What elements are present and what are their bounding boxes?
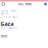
staticText: 3 hours ago	[1, 15, 18, 19]
staticText: BBC NEWS	[18, 2, 31, 6]
button[interactable]: Open app	[44, 3, 47, 5]
staticText: World	[1, 12, 9, 15]
staticText: short caption	[1, 26, 19, 29]
staticText: Gaza	[1, 20, 14, 27]
staticText: pets	[1, 33, 8, 38]
button[interactable]: Search	[1, 2, 5, 6]
staticText: Home News	[1, 9, 17, 12]
